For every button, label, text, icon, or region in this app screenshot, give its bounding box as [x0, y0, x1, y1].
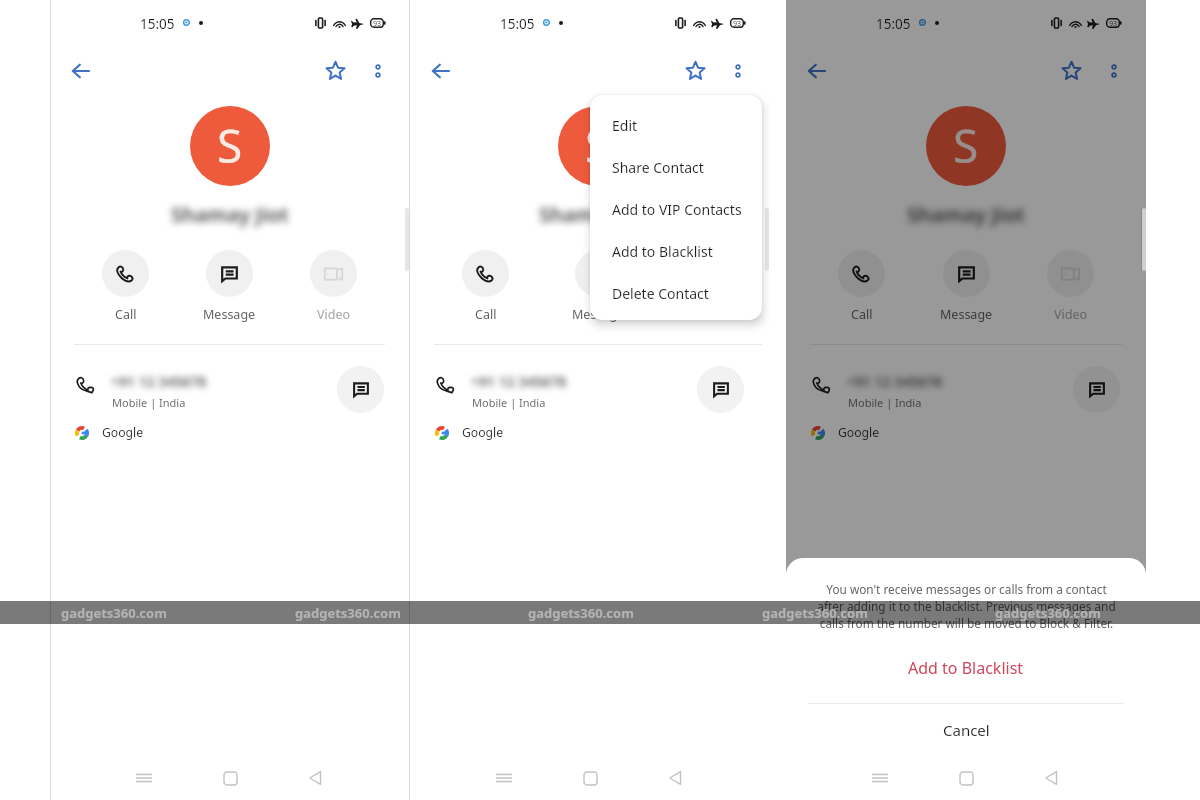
button[interactable]: Google: [786, 419, 1146, 447]
staticText: Share Contact: [612, 158, 704, 177]
button[interactable]: Add to favorites: [677, 52, 714, 89]
staticText: Shamay Jiot: [539, 200, 657, 228]
staticText: Message: [572, 306, 625, 323]
button[interactable]: Send message: [337, 366, 384, 413]
staticText: Add to Blacklist: [908, 657, 1024, 679]
staticText: S: [217, 114, 243, 177]
button[interactable]: Message: [203, 250, 256, 323]
staticText: gadgets360.com: [61, 604, 167, 622]
button[interactable]: Call: [102, 250, 149, 323]
staticText: 93: [1109, 18, 1118, 28]
button[interactable]: Add to favorites: [1053, 52, 1090, 89]
staticText: +91 12 345678: [111, 372, 207, 391]
button[interactable]: Video: [687, 250, 734, 323]
staticText: S: [953, 114, 979, 177]
button[interactable]: More options: [719, 52, 756, 89]
button[interactable]: S: [558, 106, 638, 186]
button[interactable]: Cancel: [786, 708, 1146, 752]
staticText: Add to Blacklist: [612, 242, 713, 261]
staticText: You won't receive messages or calls from…: [817, 581, 1116, 631]
staticText: 93: [373, 18, 382, 28]
staticText: Mobile | India: [112, 395, 186, 410]
staticText: Call: [851, 306, 873, 323]
staticText: 93: [733, 18, 742, 28]
staticText: Call: [475, 306, 497, 323]
button[interactable]: Back: [651, 754, 699, 800]
button[interactable]: +91 12 345678: [410, 359, 786, 419]
staticText: 15:05: [500, 15, 535, 33]
button[interactable]: Home: [566, 754, 614, 800]
button[interactable]: Send message: [1073, 366, 1120, 413]
button[interactable]: Share Contact: [590, 146, 762, 188]
button[interactable]: S: [190, 106, 270, 186]
staticText: Google: [462, 424, 504, 441]
staticText: gadgets360.com: [295, 604, 401, 622]
staticText: gadgets360.com: [995, 604, 1101, 622]
button[interactable]: Back: [291, 754, 339, 800]
staticText: +91 12 345678: [471, 372, 567, 391]
button[interactable]: Message: [572, 250, 625, 323]
staticText: 15:05: [140, 15, 175, 33]
staticText: Mobile | India: [472, 395, 546, 410]
button[interactable]: More options: [1095, 52, 1132, 89]
button[interactable]: Edit: [590, 104, 762, 146]
staticText: Google: [102, 424, 144, 441]
staticText: Message: [203, 306, 256, 323]
staticText: Shamay Jiot: [171, 200, 289, 228]
button[interactable]: Add to Blacklist: [786, 648, 1146, 688]
staticText: Cancel: [943, 720, 990, 740]
button[interactable]: Send message: [697, 366, 744, 413]
staticText: Call: [115, 306, 137, 323]
staticText: +91 12 345678: [847, 372, 943, 391]
button[interactable]: Back: [422, 52, 459, 89]
button[interactable]: Call: [838, 250, 885, 323]
button[interactable]: Google: [50, 419, 409, 447]
button[interactable]: Add to Blacklist: [590, 230, 762, 272]
button[interactable]: Recent apps: [856, 754, 904, 800]
button[interactable]: S: [926, 106, 1006, 186]
staticText: Add to VIP Contacts: [612, 200, 742, 219]
button[interactable]: Video: [310, 250, 357, 323]
button[interactable]: Home: [942, 754, 990, 800]
button[interactable]: Message: [940, 250, 993, 323]
button[interactable]: Back: [62, 52, 99, 89]
button[interactable]: Add to favorites: [317, 52, 354, 89]
button[interactable]: Back: [798, 52, 835, 89]
staticText: Google: [838, 424, 880, 441]
button[interactable]: +91 12 345678: [786, 359, 1146, 419]
staticText: Message: [940, 306, 993, 323]
staticText: Mobile | India: [848, 395, 922, 410]
button[interactable]: Home: [206, 754, 254, 800]
button[interactable]: Back: [1027, 754, 1075, 800]
button[interactable]: More options: [359, 52, 396, 89]
staticText: gadgets360.com: [528, 604, 634, 622]
staticText: 15:05: [876, 15, 911, 33]
staticText: Video: [317, 306, 351, 323]
staticText: Shamay Jiot: [907, 200, 1025, 228]
staticText: Video: [1054, 306, 1088, 323]
button[interactable]: Add to VIP Contacts: [590, 188, 762, 230]
button[interactable]: Google: [410, 419, 786, 447]
button[interactable]: Video: [1047, 250, 1094, 323]
staticText: Delete Contact: [612, 284, 709, 303]
staticText: S: [585, 114, 611, 177]
button[interactable]: Delete Contact: [590, 272, 762, 314]
button[interactable]: +91 12 345678: [50, 359, 409, 419]
staticText: Video: [694, 306, 728, 323]
button[interactable]: Recent apps: [120, 754, 168, 800]
staticText: Edit: [612, 116, 638, 135]
staticText: gadgets360.com: [762, 604, 868, 622]
button[interactable]: Call: [462, 250, 509, 323]
button[interactable]: Recent apps: [480, 754, 528, 800]
